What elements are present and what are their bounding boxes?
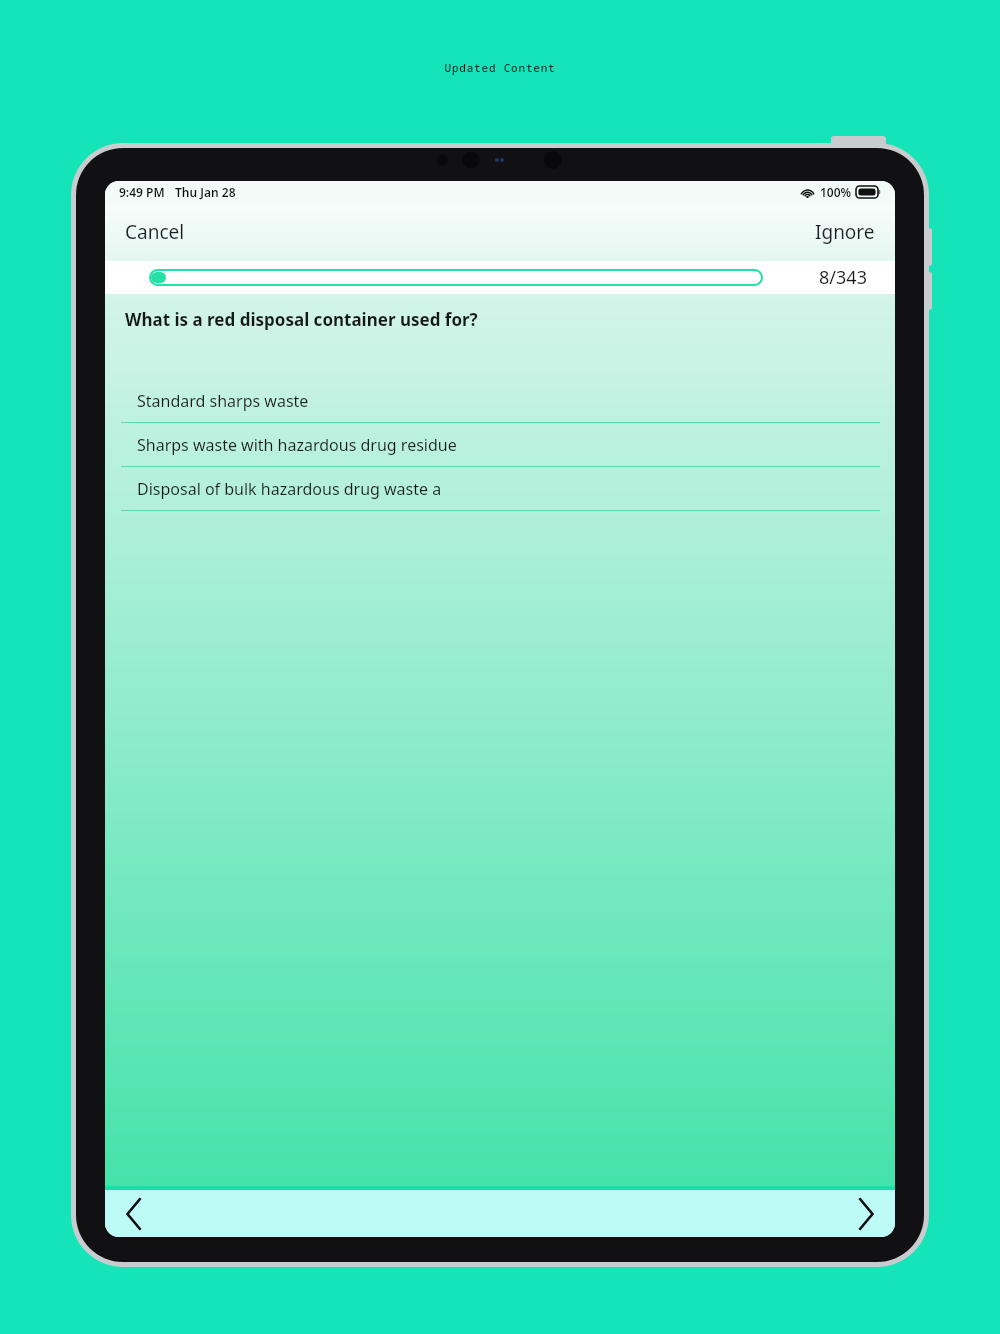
staticText: 9:49 PM	[119, 184, 165, 200]
staticText: 100%	[820, 184, 852, 200]
staticText: Ignore	[815, 219, 875, 245]
button[interactable]: Sharps waste with hazardous drug residue	[105, 423, 895, 467]
staticText: Standard sharps waste	[137, 390, 309, 412]
button[interactable]: Cancel	[105, 209, 205, 255]
staticText: Thu Jan 28	[175, 184, 236, 200]
button[interactable]: Standard sharps waste	[105, 379, 895, 423]
button[interactable]: Disposal of bulk hazardous drug waste a	[105, 467, 895, 511]
staticText: Sharps waste with hazardous drug residue	[137, 434, 457, 456]
button[interactable]: Previous	[105, 1190, 163, 1237]
button[interactable]: Next	[837, 1190, 895, 1237]
staticText: Disposal of bulk hazardous drug waste a	[137, 478, 442, 500]
staticText: What is a red disposal container used fo…	[125, 308, 478, 331]
staticText: Cancel	[125, 219, 185, 245]
staticText: 8/343	[801, 265, 885, 290]
button[interactable]: Ignore	[795, 209, 895, 255]
staticText: Updated Content	[0, 60, 1000, 75]
